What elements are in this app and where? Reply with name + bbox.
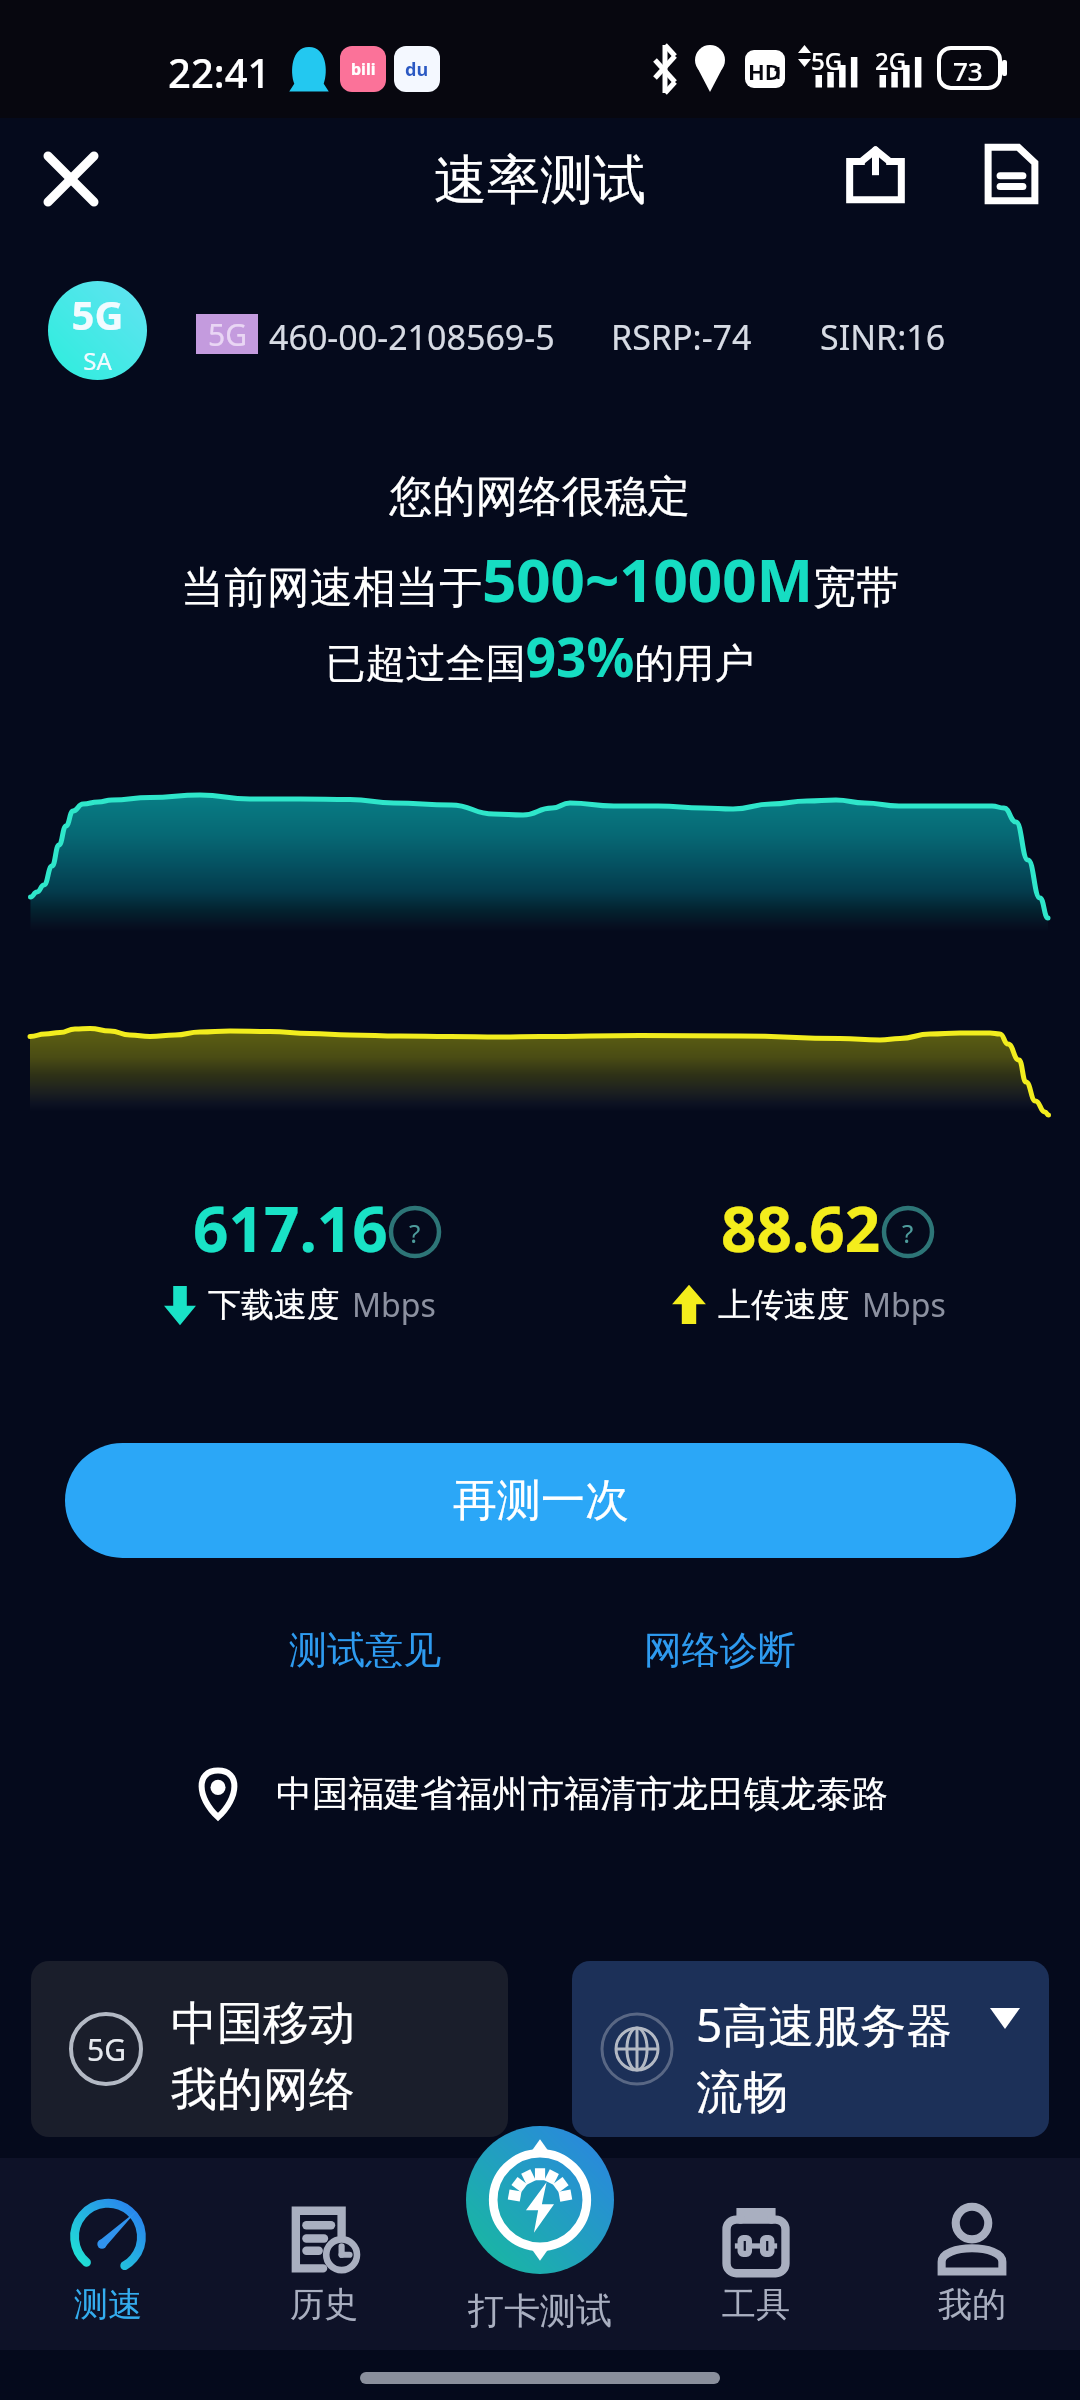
staticText: du [405,57,429,82]
staticText: 已超过全国93%的用户 [0,620,1080,692]
button[interactable]: Download info [389,1206,441,1258]
staticText: 88.62 [721,1186,881,1270]
staticText: 您的网络很稳定 [0,470,1080,524]
staticText: RSRP:-74 [611,314,752,360]
staticText: 当前网速相当于500~1000M宽带 [0,538,1080,620]
staticText: 中国福建省福州市福清市龙田镇龙泰路 [276,1771,888,1816]
staticText: 上传速度 [718,1284,850,1326]
button[interactable]: 工具 [648,2158,864,2350]
staticText: HD [748,56,781,86]
button[interactable]: 5高速服务器 [572,1961,1049,2137]
staticText: SA [48,344,147,377]
staticText: 我的网络 [171,2061,355,2119]
staticText: 下载速度 [208,1284,340,1326]
button[interactable]: 历史 [216,2158,432,2350]
staticText: 5G [208,314,247,354]
staticText: 流畅 [696,2064,788,2122]
staticText: 5高速服务器 [696,1993,953,2056]
staticText: 再测一次 [453,1473,629,1528]
button[interactable]: Close [30,138,112,220]
staticText: 5G [87,2029,126,2070]
button[interactable]: 5G [31,1961,508,2137]
staticText: 5G [811,44,843,77]
staticText: 1 [773,62,783,84]
staticText: SINR:16 [820,314,946,360]
staticText: ? [409,1215,421,1250]
staticText: 网络诊断 [644,1626,796,1674]
staticText: 测速 [74,2283,142,2326]
button[interactable]: 我的 [864,2158,1080,2350]
button[interactable]: 测速 [0,2158,216,2350]
button[interactable]: Upload info [882,1206,934,1258]
button[interactable]: 再测一次 [65,1443,1016,1558]
button[interactable]: 打卡测试 [466,2126,614,2274]
button[interactable]: Report [983,143,1040,205]
staticText: 中国移动 [171,1995,355,2053]
staticText: 工具 [722,2283,790,2326]
staticText: 617.16 [193,1186,388,1270]
staticText: 测试意见 [289,1626,441,1674]
staticText: 73 [953,53,983,88]
staticText: Mbps [862,1283,946,1327]
staticText: 2G [875,44,907,77]
button[interactable]: 测试意见 [275,1618,455,1682]
staticText: bili [351,58,376,80]
staticText: 460-00-2108569-5 [269,314,555,360]
staticText: 5G [48,287,147,341]
staticText: 速率测试 [0,147,1080,214]
staticText: ? [902,1215,914,1250]
staticText: 22:41 [168,45,271,99]
staticText: 我的 [938,2283,1006,2326]
button[interactable]: 网络诊断 [630,1618,810,1682]
staticText: 打卡测试 [400,2288,680,2333]
staticText: Mbps [352,1283,436,1327]
staticText: 历史 [290,2283,358,2326]
button[interactable]: Share [844,144,907,204]
